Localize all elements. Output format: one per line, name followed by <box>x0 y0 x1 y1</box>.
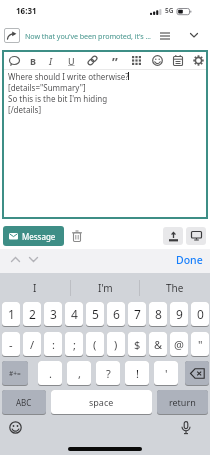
button[interactable] <box>186 29 202 42</box>
button[interactable] <box>8 420 23 435</box>
button[interactable] <box>157 29 173 42</box>
button[interactable]: Done <box>172 252 206 268</box>
button[interactable]: ' <box>154 361 178 385</box>
staticText: 4 <box>71 306 78 322</box>
button[interactable] <box>185 361 209 385</box>
button[interactable]: ABC <box>2 390 46 414</box>
staticText: $ <box>134 337 141 352</box>
button[interactable]: 3 <box>44 302 62 326</box>
staticText: 3 <box>50 306 57 322</box>
button[interactable]: space <box>51 390 152 414</box>
button[interactable] <box>70 227 84 245</box>
staticText: I <box>33 281 37 295</box>
staticText: ! <box>136 366 139 381</box>
button[interactable]: ? <box>96 361 120 385</box>
button[interactable]: / <box>23 332 41 356</box>
staticText: 7 <box>134 306 141 322</box>
staticText: @ <box>174 337 184 352</box>
button[interactable]: " <box>191 332 209 356</box>
staticText: & <box>154 337 163 352</box>
staticText: 5 <box>92 306 99 322</box>
staticText: Where should I write otherwise? <box>8 71 129 82</box>
staticText: I <box>49 55 53 67</box>
button[interactable] <box>26 253 40 265</box>
staticText: 0 <box>197 306 204 322</box>
button[interactable]: ; <box>65 332 83 356</box>
button[interactable]: I <box>0 274 70 302</box>
staticText: [details="Summary"] <box>8 82 86 93</box>
button[interactable]: 7 <box>128 302 146 326</box>
button[interactable]: ” <box>108 53 122 68</box>
staticText: 5G <box>165 6 174 15</box>
button[interactable]: I <box>45 53 57 68</box>
staticText: / <box>30 337 35 352</box>
staticText: ” <box>112 53 118 68</box>
staticText: The <box>166 281 184 295</box>
staticText: " <box>198 337 203 352</box>
button[interactable] <box>8 253 22 265</box>
staticText: - <box>9 337 13 352</box>
button[interactable] <box>85 53 99 68</box>
button[interactable]: 5 <box>86 302 104 326</box>
button[interactable]: ! <box>125 361 149 385</box>
button[interactable]: ( <box>86 332 104 356</box>
button[interactable] <box>129 53 143 68</box>
staticText: ABC <box>16 397 32 408</box>
button[interactable]: Now that you've been promoted, it's ... <box>25 31 159 41</box>
staticText: ( <box>93 337 97 352</box>
staticText: ) <box>114 337 118 352</box>
button[interactable]: 6 <box>107 302 125 326</box>
staticText: , <box>78 366 81 381</box>
button[interactable]: return <box>157 390 208 414</box>
button[interactable] <box>150 53 164 68</box>
staticText: : <box>52 337 55 352</box>
button[interactable]: . <box>38 361 62 385</box>
staticText: So this is the bit I'm hiding <box>8 93 108 104</box>
staticText: 8 <box>155 306 162 322</box>
button[interactable]: $ <box>128 332 146 356</box>
staticText: ; <box>73 337 76 352</box>
button[interactable]: : <box>44 332 62 356</box>
staticText: Done <box>176 253 203 267</box>
button[interactable] <box>4 28 20 43</box>
button[interactable]: & <box>149 332 167 356</box>
button[interactable]: - <box>2 332 20 356</box>
button[interactable] <box>191 53 205 68</box>
staticText: 2 <box>29 306 36 322</box>
button[interactable] <box>163 227 183 245</box>
staticText: Message <box>22 231 56 242</box>
button[interactable] <box>8 53 21 68</box>
button[interactable] <box>179 418 193 437</box>
staticText: 16:31 <box>16 5 37 16</box>
staticText: B <box>30 55 36 67</box>
button[interactable]: 9 <box>170 302 188 326</box>
button[interactable]: ) <box>107 332 125 356</box>
button[interactable]: 0 <box>191 302 209 326</box>
staticText: I'm <box>98 281 113 295</box>
button[interactable] <box>171 53 185 68</box>
staticText: [/details] <box>8 104 42 115</box>
staticText: #+= <box>9 369 21 378</box>
button[interactable]: B <box>26 53 39 68</box>
button[interactable]: I'm <box>70 274 140 302</box>
button[interactable]: Message <box>3 226 64 246</box>
button[interactable]: 4 <box>65 302 83 326</box>
staticText: 6 <box>113 306 120 322</box>
staticText: 9 <box>176 306 183 322</box>
button[interactable]: @ <box>170 332 188 356</box>
staticText: return <box>169 396 196 408</box>
staticText: ' <box>165 366 168 381</box>
staticText: 1 <box>8 306 15 322</box>
button[interactable] <box>186 227 206 245</box>
button[interactable]: 1 <box>2 302 20 326</box>
staticText: . <box>49 366 52 381</box>
button[interactable]: 8 <box>149 302 167 326</box>
staticText: ? <box>106 366 111 381</box>
staticText: space <box>89 396 114 408</box>
staticText: U <box>68 55 75 67</box>
button[interactable]: U <box>64 53 78 68</box>
button[interactable]: #+= <box>2 361 28 385</box>
button[interactable]: , <box>67 361 91 385</box>
button[interactable]: 2 <box>23 302 41 326</box>
button[interactable]: The <box>140 274 210 302</box>
